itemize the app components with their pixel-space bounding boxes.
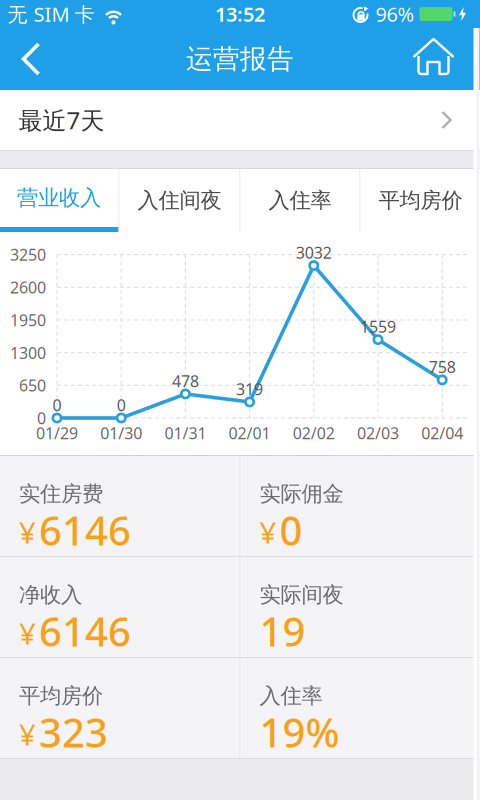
staticText: 实际间夜 xyxy=(259,582,343,608)
button[interactable]: 营业收入 xyxy=(0,169,118,232)
staticText: ¥ xyxy=(19,613,36,652)
staticText: 营业收入 xyxy=(17,185,101,211)
staticText: 最近7天 xyxy=(18,104,104,136)
staticText: 650 xyxy=(19,375,46,396)
staticText: ¥ xyxy=(259,512,276,551)
staticText: 1950 xyxy=(10,309,46,331)
staticText: 3032 xyxy=(296,242,332,263)
staticText: 323 xyxy=(39,705,108,758)
staticText: ¥ xyxy=(19,714,36,753)
staticText: 0 xyxy=(37,407,46,429)
staticText: 96% xyxy=(375,1,414,27)
staticText: ¥ xyxy=(19,512,36,551)
staticText: 01/31 xyxy=(164,422,206,444)
staticText: 运营报告 xyxy=(186,43,294,75)
staticText: 19 xyxy=(259,604,305,657)
staticText: 1559 xyxy=(360,316,396,337)
staticText: 无 SIM 卡 xyxy=(7,1,94,27)
staticText: 02/03 xyxy=(357,422,399,444)
staticText: 01/30 xyxy=(100,422,142,444)
staticText: 入住间夜 xyxy=(137,187,221,214)
staticText: 01/29 xyxy=(36,422,78,444)
button[interactable]: Back xyxy=(0,36,45,82)
staticText: 02/01 xyxy=(229,422,271,444)
button[interactable]: 最近7天 xyxy=(0,90,480,150)
staticText: 0 xyxy=(279,503,302,556)
staticText: 758 xyxy=(429,356,456,377)
button[interactable]: 入住间夜 xyxy=(119,169,239,232)
staticText: 实际佣金 xyxy=(259,481,343,507)
staticText: 入住率 xyxy=(259,683,322,709)
staticText: 1300 xyxy=(10,342,46,363)
staticText: 6146 xyxy=(39,503,131,556)
staticText: 0 xyxy=(52,394,61,416)
button[interactable]: 入住率 xyxy=(240,169,359,232)
staticText: 入住率 xyxy=(268,187,331,214)
staticText: 13:52 xyxy=(215,1,265,27)
staticText: 02/04 xyxy=(421,422,463,444)
staticText: 净收入 xyxy=(19,582,82,608)
button[interactable]: 平均房价 xyxy=(360,169,480,232)
staticText: 02/02 xyxy=(293,422,335,444)
staticText: 478 xyxy=(172,370,199,391)
staticText: 19% xyxy=(259,705,339,758)
staticText: 2600 xyxy=(10,277,46,298)
button[interactable]: Home xyxy=(410,36,456,82)
staticText: 平均房价 xyxy=(19,683,103,709)
staticText: 3250 xyxy=(10,244,46,265)
staticText: 6146 xyxy=(39,604,131,657)
staticText: 319 xyxy=(236,378,263,399)
staticText: 平均房价 xyxy=(378,187,462,214)
staticText: 0 xyxy=(117,394,126,416)
staticText: 实住房费 xyxy=(19,481,103,507)
